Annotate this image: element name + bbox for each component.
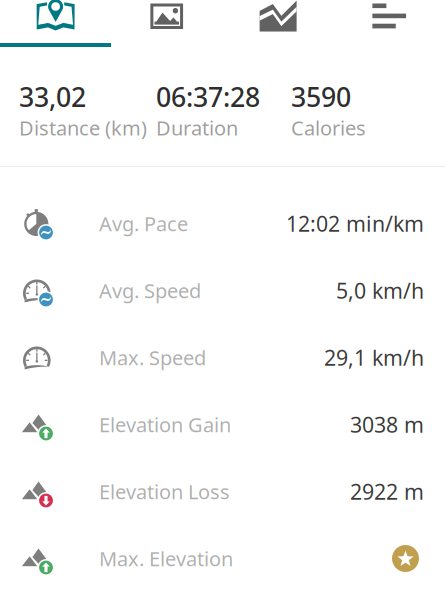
staticText: 3038 m bbox=[350, 410, 424, 439]
button[interactable]: Max. Speed bbox=[0, 324, 445, 391]
staticText: 5,0 km/h bbox=[336, 276, 424, 305]
button[interactable]: Elevation Loss bbox=[0, 458, 445, 525]
button[interactable]: Avg. Pace bbox=[0, 190, 445, 257]
button[interactable]: Max. Elevation bbox=[0, 525, 445, 592]
staticText: 2922 m bbox=[350, 477, 424, 506]
staticText: 29,1 km/h bbox=[324, 343, 424, 372]
staticText: Duration bbox=[156, 114, 238, 141]
button[interactable]: Statistics bbox=[334, 0, 445, 45]
staticText: Max. Speed bbox=[99, 344, 206, 371]
staticText: Avg. Pace bbox=[99, 210, 188, 237]
staticText: 12:02 min/km bbox=[286, 209, 424, 238]
staticText: Calories bbox=[291, 114, 366, 141]
staticText: Elevation Loss bbox=[99, 478, 230, 505]
button[interactable]: Charts bbox=[222, 0, 334, 45]
staticText: Distance (km) bbox=[19, 114, 147, 141]
button[interactable]: Map bbox=[0, 0, 111, 45]
staticText: 33,02 bbox=[19, 79, 86, 114]
staticText: Max. Elevation bbox=[99, 545, 233, 572]
button[interactable]: Avg. Speed bbox=[0, 257, 445, 324]
staticText: 3590 bbox=[291, 79, 351, 114]
staticText: Elevation Gain bbox=[99, 411, 231, 438]
button[interactable]: Elevation Gain bbox=[0, 391, 445, 458]
staticText: 06:37:28 bbox=[156, 79, 260, 114]
button[interactable]: Photos bbox=[111, 0, 222, 45]
staticText: Avg. Speed bbox=[99, 277, 201, 304]
